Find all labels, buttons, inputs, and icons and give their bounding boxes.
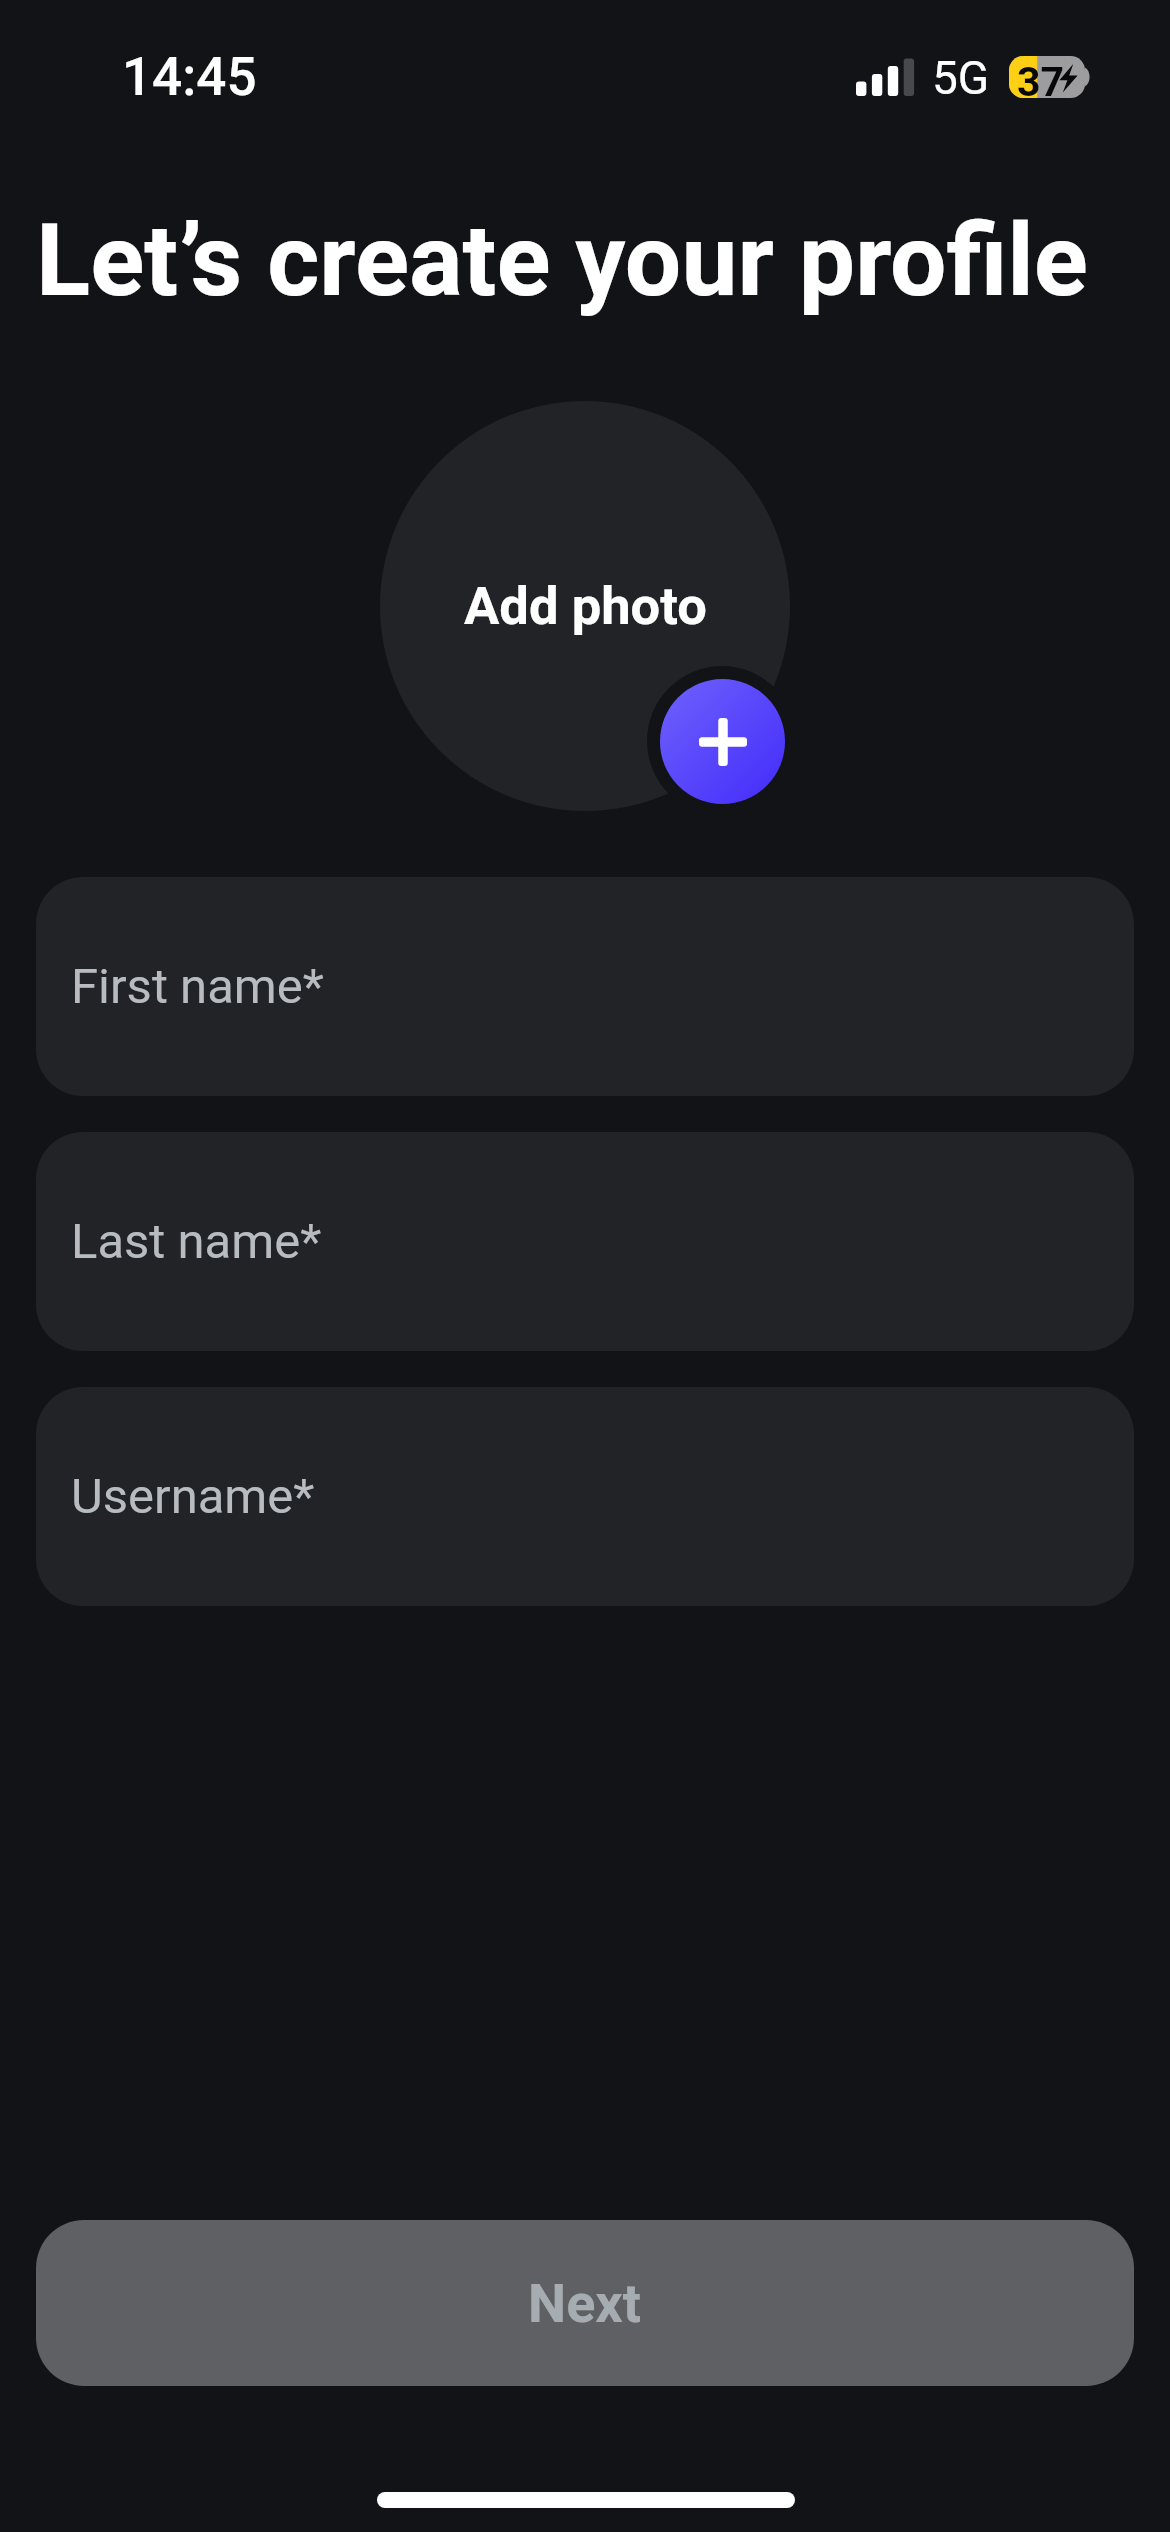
- staticText: Last name*: [71, 1213, 322, 1270]
- button[interactable]: Last name*: [36, 1132, 1134, 1351]
- staticText: 14:45: [122, 46, 257, 108]
- button[interactable]: Add photo: [660, 679, 785, 804]
- staticText: Let’s create your profile: [36, 202, 1088, 319]
- button[interactable]: Next: [36, 2220, 1134, 2386]
- button[interactable]: Username*: [36, 1387, 1134, 1606]
- staticText: First name*: [71, 958, 324, 1015]
- staticText: Add photo: [464, 575, 707, 637]
- staticText: Username*: [71, 1468, 315, 1525]
- button[interactable]: First name*: [36, 877, 1134, 1096]
- button[interactable]: Add photo: [380, 401, 790, 811]
- staticText: 5G: [932, 51, 990, 105]
- staticText: 37: [1017, 58, 1065, 100]
- staticText: Next: [528, 2272, 642, 2335]
